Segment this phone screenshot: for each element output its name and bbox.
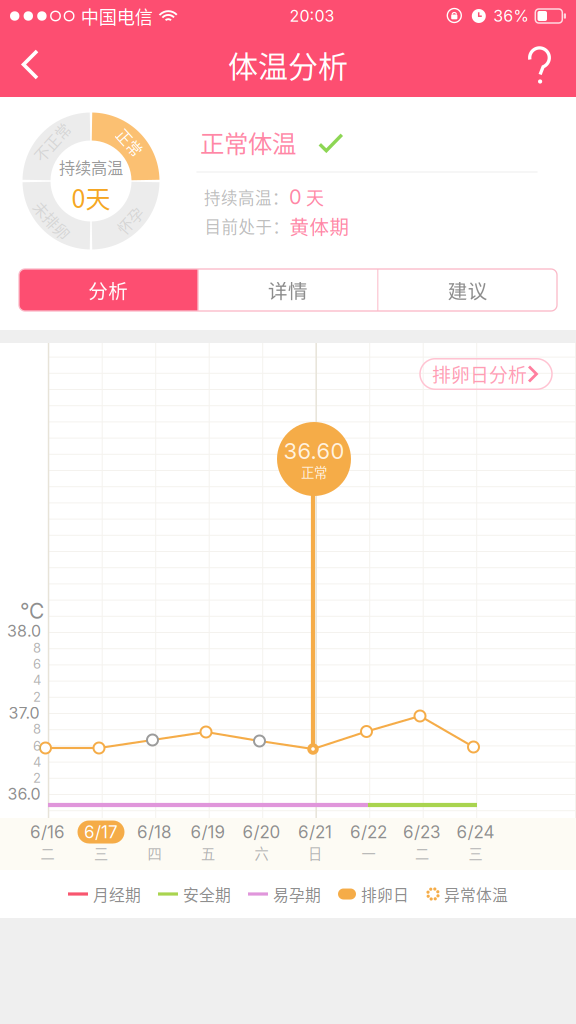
staticText: 8 xyxy=(33,640,41,656)
staticText: 黄体期 xyxy=(289,212,349,240)
staticText: 4 xyxy=(33,672,41,688)
staticText: 6 xyxy=(33,738,41,754)
staticText: 三 xyxy=(468,843,482,863)
staticText: 4 xyxy=(33,754,41,770)
staticText: 6/20 xyxy=(242,822,280,842)
staticText: 持续高温： xyxy=(204,185,289,209)
staticText: 体温分析 xyxy=(228,43,348,86)
staticText: 38.0 xyxy=(7,621,41,641)
staticText: 正常 xyxy=(301,462,327,482)
staticText: 36% xyxy=(493,6,529,26)
staticText: 分析 xyxy=(88,276,128,304)
staticText: 20:03 xyxy=(290,6,335,26)
button[interactable]: Help xyxy=(510,33,570,98)
button[interactable]: Back xyxy=(0,32,60,97)
staticText: 正常 xyxy=(115,131,145,153)
staticText: 日 xyxy=(308,843,322,863)
staticText: 0 xyxy=(289,185,302,209)
staticText: 排卵日 xyxy=(361,883,409,905)
staticText: 一 xyxy=(361,843,375,863)
staticText: 36.60 xyxy=(283,438,344,464)
staticText: 6/17 xyxy=(84,822,118,842)
staticText: 目前处于： xyxy=(204,214,289,238)
staticText: 6/21 xyxy=(298,822,332,842)
staticText: 天 xyxy=(302,184,324,210)
staticText: 详情 xyxy=(268,276,308,304)
staticText: 三 xyxy=(94,843,108,863)
staticText: 五 xyxy=(201,843,215,863)
staticText: 二 xyxy=(415,843,429,863)
button[interactable]: 建议 xyxy=(378,269,557,311)
staticText: 月经期 xyxy=(93,883,141,905)
staticText: 2 xyxy=(33,770,41,786)
staticText: 安全期 xyxy=(183,883,231,905)
staticText: 6/23 xyxy=(403,822,441,842)
staticText: 六 xyxy=(254,843,268,863)
staticText: 建议 xyxy=(448,276,488,304)
staticText: 异常体温 xyxy=(444,883,508,905)
button[interactable]: 详情 xyxy=(199,269,377,311)
button[interactable]: 分析 xyxy=(19,269,198,311)
staticText: 不正常 xyxy=(29,131,74,153)
staticText: 6/24 xyxy=(456,822,494,842)
staticText: 中国电信 xyxy=(81,3,153,29)
staticText: 未排卵 xyxy=(29,209,74,231)
staticText: 持续高温 xyxy=(59,155,123,179)
staticText: 6/22 xyxy=(350,822,387,842)
staticText: 37.0 xyxy=(8,703,39,723)
staticText: 36.0 xyxy=(7,784,40,804)
staticText: 易孕期 xyxy=(273,883,321,905)
staticText: °C xyxy=(20,598,44,624)
staticText: 8 xyxy=(33,721,41,737)
staticText: 2 xyxy=(33,689,41,705)
staticText: 6/16 xyxy=(30,822,65,842)
staticText: 正常体温 xyxy=(200,124,296,160)
staticText: 0天 xyxy=(71,179,110,215)
staticText: 怀孕 xyxy=(115,209,145,231)
staticText: 排卵日分析 xyxy=(432,360,527,388)
staticText: 二 xyxy=(40,843,54,863)
staticText: 四 xyxy=(147,843,161,863)
staticText: 6/19 xyxy=(190,822,225,842)
staticText: 6 xyxy=(33,656,41,672)
button[interactable]: 排卵日分析 xyxy=(420,359,552,389)
staticText: 6/18 xyxy=(137,822,172,842)
